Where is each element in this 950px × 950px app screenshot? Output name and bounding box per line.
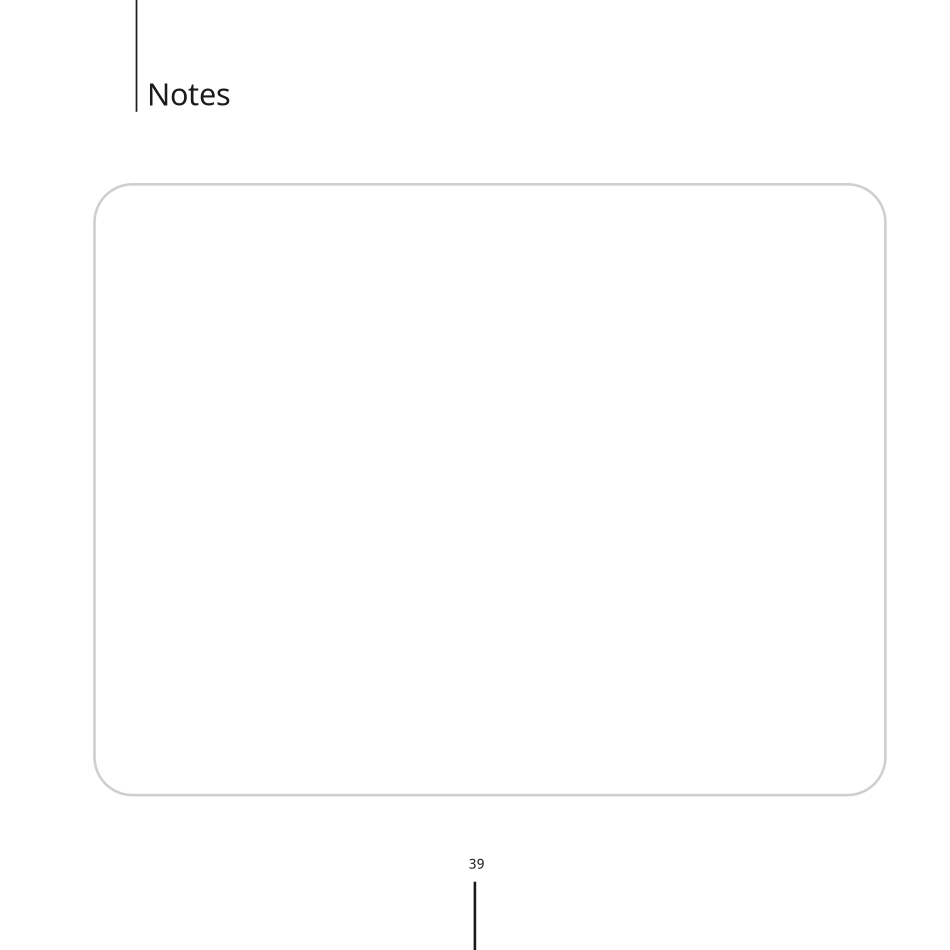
staticText: Notes [147, 73, 231, 114]
staticText: 39 [469, 853, 485, 873]
button[interactable]: Notes field [94, 184, 885, 795]
